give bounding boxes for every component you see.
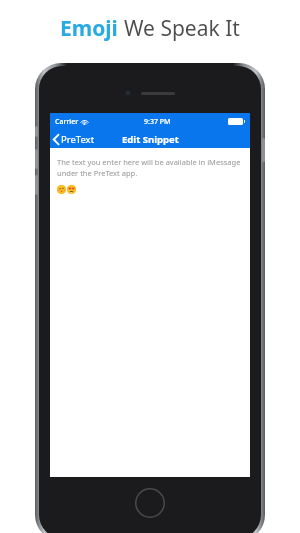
- button[interactable]: PreText: [53, 130, 95, 148]
- staticText: We Speak It: [124, 14, 240, 43]
- staticText: Carrier: [55, 117, 79, 127]
- button[interactable]: Home: [135, 488, 165, 518]
- button[interactable]: The text you enter here will be availabl…: [57, 157, 243, 477]
- staticText: PreText: [61, 133, 95, 146]
- staticText: Edit Snippet: [122, 133, 179, 146]
- staticText: The text you enter here will be availabl…: [57, 157, 243, 178]
- staticText: Emoji: [60, 14, 118, 43]
- staticText: 9:37 PM: [144, 117, 171, 127]
